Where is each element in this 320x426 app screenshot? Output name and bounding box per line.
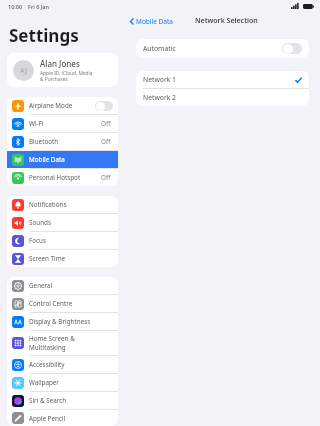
- staticText: Personal Hotspot: [29, 173, 101, 182]
- staticText: Home Screen &: [29, 334, 75, 343]
- button[interactable]: Network 2: [136, 89, 309, 106]
- staticText: Accessibility: [29, 360, 113, 369]
- staticText: Display & Brightness: [29, 317, 113, 326]
- button[interactable]: Wallpaper: [7, 374, 118, 391]
- staticText: Wallpaper: [29, 378, 113, 387]
- button[interactable]: Display & Brightness: [7, 313, 118, 330]
- staticText: Automatic: [143, 44, 282, 53]
- staticText: Off: [101, 137, 111, 146]
- staticText: Bluetooth: [29, 137, 101, 146]
- staticText: Settings: [9, 24, 79, 47]
- staticText: Fri 6 Jan: [28, 3, 49, 10]
- staticText: Notifications: [29, 200, 113, 209]
- staticText: AJ: [20, 66, 27, 76]
- button[interactable]: Mobile Data: [7, 151, 118, 168]
- button[interactable]: Sounds: [7, 214, 118, 231]
- button[interactable]: Home Screen &: [7, 331, 118, 355]
- button[interactable]: Focus: [7, 232, 118, 249]
- staticText: Screen Time: [29, 254, 113, 263]
- staticText: Network Selection: [195, 16, 258, 26]
- button[interactable]: Airplane Mode: [7, 97, 118, 114]
- button[interactable]: Accessibility: [7, 356, 118, 373]
- button[interactable]: Toggle: [282, 43, 302, 54]
- staticText: 10:00: [8, 3, 23, 10]
- button[interactable]: Bluetooth: [7, 133, 118, 150]
- staticText: Apple ID, iCloud, Media & Purchases: [40, 70, 93, 82]
- button[interactable]: General: [7, 277, 118, 294]
- staticText: Mobile Data: [29, 155, 113, 164]
- staticText: Off: [101, 173, 111, 182]
- staticText: Alan Jones: [40, 58, 80, 69]
- button[interactable]: Wi-Fi: [7, 115, 118, 132]
- staticText: Wi-Fi: [29, 119, 101, 128]
- button[interactable]: Automatic: [136, 39, 309, 58]
- button[interactable]: Network 1: [136, 71, 309, 88]
- staticText: General: [29, 281, 113, 290]
- staticText: Multitasking: [29, 343, 66, 352]
- staticText: Off: [101, 119, 111, 128]
- staticText: Network 2: [143, 93, 302, 102]
- other: Selected: [295, 77, 302, 83]
- button[interactable]: Screen Time: [7, 250, 118, 267]
- button[interactable]: Notifications: [7, 196, 118, 213]
- button[interactable]: AJ: [7, 53, 118, 87]
- button[interactable]: Siri & Search: [7, 392, 118, 409]
- button[interactable]: Apple Pencil: [7, 410, 118, 426]
- staticText: Sounds: [29, 218, 113, 227]
- staticText: Airplane Mode: [29, 101, 95, 110]
- staticText: Siri & Search: [29, 396, 113, 405]
- staticText: Control Centre: [29, 299, 113, 308]
- staticText: Focus: [29, 236, 113, 245]
- staticText: Network 1: [143, 75, 295, 84]
- staticText: Mobile Data: [136, 17, 173, 26]
- button[interactable]: Toggle: [95, 101, 113, 111]
- staticText: Apple Pencil: [29, 414, 113, 423]
- button[interactable]: Mobile Data: [125, 15, 177, 28]
- button[interactable]: Control Centre: [7, 295, 118, 312]
- button[interactable]: Personal Hotspot: [7, 169, 118, 186]
